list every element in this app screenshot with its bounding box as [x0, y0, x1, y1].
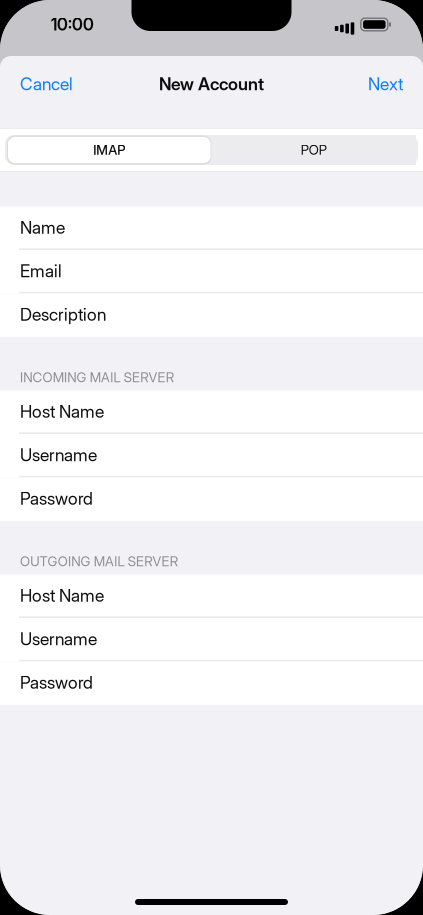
staticText: Name: [20, 217, 65, 238]
button[interactable]: Username: [0, 618, 423, 661]
staticText: INCOMING MAIL SERVER: [20, 369, 174, 385]
staticText: Host Name: [20, 585, 104, 606]
staticText: IMAP: [93, 142, 125, 158]
staticText: POP: [301, 142, 327, 158]
staticText: Description: [20, 304, 106, 325]
button[interactable]: IMAP: [5, 135, 211, 165]
staticText: 10:00: [51, 14, 94, 35]
button[interactable]: Host Name: [0, 390, 423, 434]
button[interactable]: Email: [0, 250, 423, 293]
button[interactable]: Description: [0, 293, 423, 337]
button[interactable]: Next: [354, 60, 423, 107]
button[interactable]: POP: [211, 135, 418, 165]
staticText: Next: [368, 73, 403, 94]
staticText: Password: [20, 488, 93, 509]
staticText: Email: [20, 260, 62, 281]
staticText: Username: [20, 628, 97, 649]
button[interactable]: Username: [0, 434, 423, 477]
button[interactable]: Password: [0, 477, 423, 521]
staticText: Username: [20, 444, 97, 465]
staticText: Password: [20, 672, 93, 693]
button[interactable]: Password: [0, 661, 423, 705]
button[interactable]: Cancel: [0, 60, 87, 107]
button[interactable]: Host Name: [0, 574, 423, 618]
staticText: Host Name: [20, 401, 104, 422]
staticText: New Account: [159, 73, 264, 94]
staticText: OUTGOING MAIL SERVER: [20, 553, 178, 569]
button[interactable]: Name: [0, 206, 423, 250]
staticText: Cancel: [20, 73, 73, 94]
